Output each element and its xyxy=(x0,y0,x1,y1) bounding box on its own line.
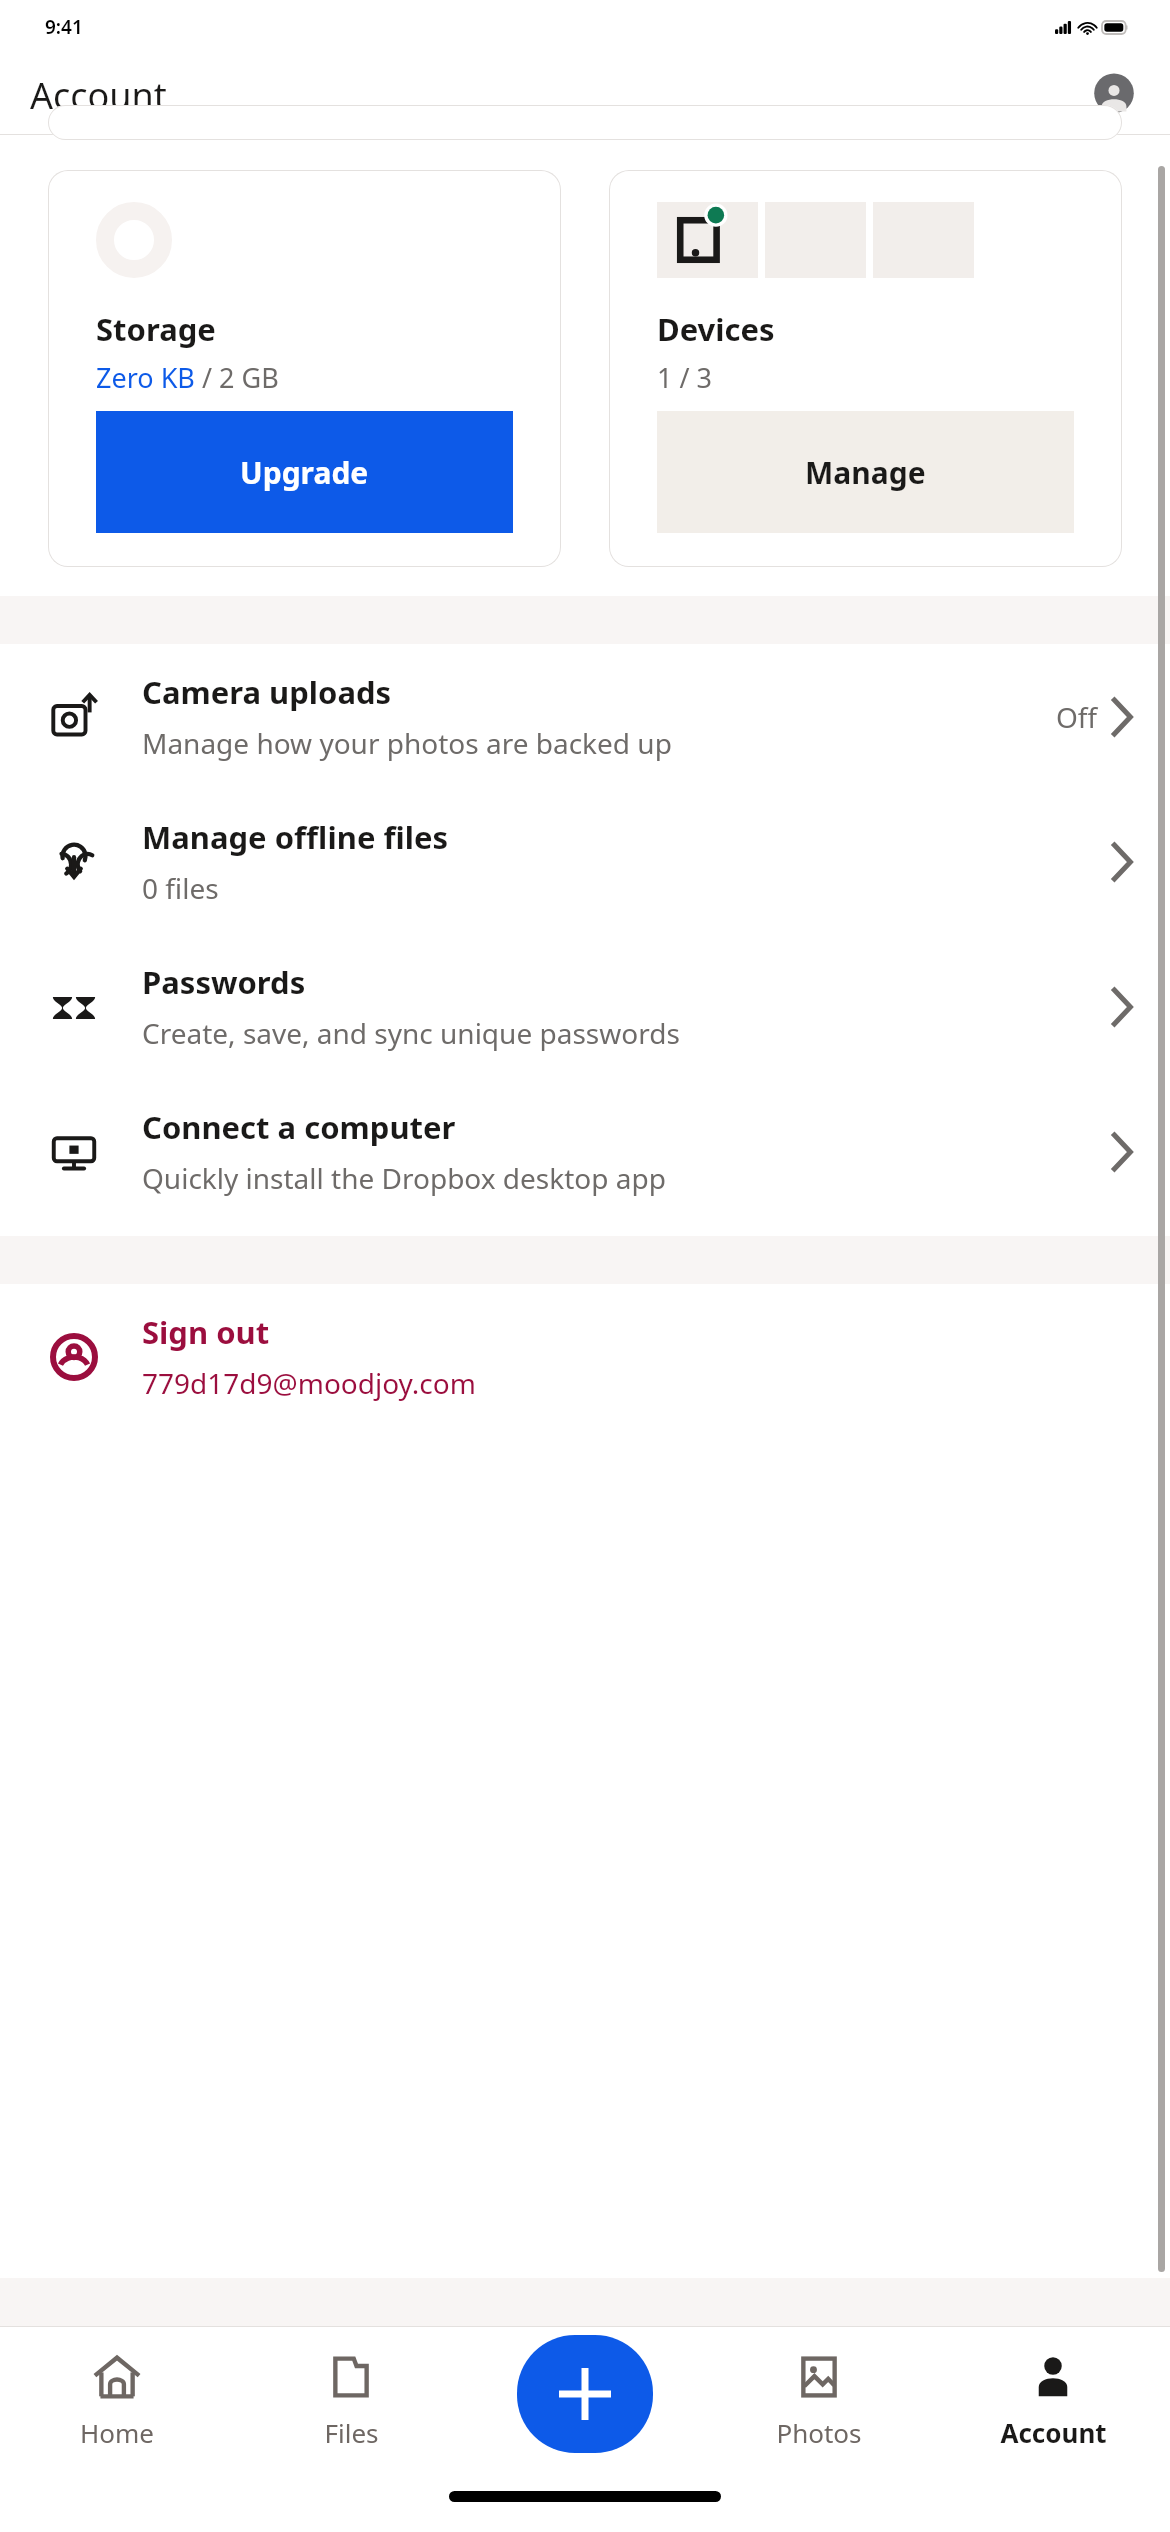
button[interactable]: Account xyxy=(936,2327,1170,2472)
staticText: Quickly install the Dropbox desktop app xyxy=(142,1159,666,1197)
button[interactable]: Manage offline files xyxy=(0,789,1170,934)
button[interactable]: Create xyxy=(517,2335,653,2453)
staticText: 1 / 3 xyxy=(657,359,712,396)
staticText: Storage xyxy=(96,308,216,350)
staticText: Manage how your photos are backed up xyxy=(142,724,672,762)
staticText: Account xyxy=(1000,2415,1107,2450)
staticText: Photos xyxy=(776,2415,862,2450)
staticText: Files xyxy=(324,2415,379,2450)
button[interactable]: Home xyxy=(0,2327,234,2472)
staticText: Home xyxy=(80,2415,154,2450)
staticText: Connect a computer xyxy=(142,1106,456,1148)
staticText: Account xyxy=(30,71,167,120)
staticText: Zero KB xyxy=(96,359,195,396)
button[interactable]: Sign out xyxy=(0,1284,1170,1429)
staticText: Manage offline files xyxy=(142,816,449,858)
button[interactable]: Camera uploads xyxy=(0,644,1170,789)
button[interactable]: Connect a computer xyxy=(0,1079,1170,1224)
button[interactable]: Upgrade xyxy=(96,411,513,533)
button[interactable]: Manage xyxy=(657,411,1074,533)
staticText: Passwords xyxy=(142,961,306,1003)
staticText: 9:41 xyxy=(45,14,83,40)
button[interactable]: Files xyxy=(234,2327,468,2472)
staticText: Upgrade xyxy=(240,452,369,493)
staticText: 0 files xyxy=(142,869,219,907)
staticText: / 2 GB xyxy=(195,359,279,396)
button[interactable]: Passwords xyxy=(0,934,1170,1079)
button[interactable]: Photos xyxy=(702,2327,936,2472)
staticText: Sign out xyxy=(142,1311,270,1353)
staticText: Camera uploads xyxy=(142,671,392,713)
staticText: Devices xyxy=(657,308,775,350)
button[interactable]: Profile xyxy=(1088,69,1140,121)
staticText: Off xyxy=(1056,698,1098,736)
staticText: Manage xyxy=(805,452,926,493)
staticText: Create, save, and sync unique passwords xyxy=(142,1014,680,1052)
staticText: 779d17d9@moodjoy.com xyxy=(142,1364,476,1402)
